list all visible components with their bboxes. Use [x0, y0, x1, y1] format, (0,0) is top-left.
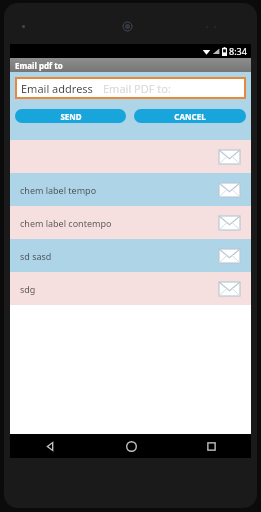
- staticText: 8:34: [229, 45, 247, 57]
- staticText: sd sasd: [20, 250, 217, 262]
- button[interactable]: Back: [10, 434, 91, 458]
- staticText: Email pdf to: [15, 60, 63, 71]
- button[interactable]: Email address: [15, 77, 246, 99]
- button[interactable]: Email: [217, 281, 241, 297]
- staticText: Email address: [21, 81, 93, 96]
- staticText: chem label tempo: [20, 184, 217, 196]
- button[interactable]: sdg: [10, 272, 251, 305]
- button[interactable]: SEND: [15, 109, 126, 123]
- button[interactable]: Email: [217, 149, 241, 165]
- button[interactable]: sd sasd: [10, 239, 251, 272]
- staticText: Email PDF to:: [103, 81, 171, 96]
- staticText: chem label contempo: [20, 217, 217, 229]
- staticText: sdg: [20, 283, 217, 295]
- staticText: SEND: [60, 111, 82, 122]
- button[interactable]: Email: [217, 182, 241, 198]
- button[interactable]: chem label contempo: [10, 206, 251, 239]
- button[interactable]: chem label tempo: [10, 173, 251, 206]
- button[interactable]: Recents: [171, 434, 251, 458]
- button[interactable]: Email: [10, 140, 251, 173]
- button[interactable]: Email: [217, 215, 241, 231]
- button[interactable]: Email: [217, 248, 241, 264]
- button[interactable]: Home: [91, 434, 171, 458]
- staticText: CANCEL: [174, 111, 206, 122]
- button[interactable]: CANCEL: [134, 109, 246, 123]
